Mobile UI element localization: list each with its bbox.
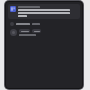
- button[interactable]: Action: [32, 29, 41, 33]
- button[interactable]: Action: [8, 29, 80, 36]
- button[interactable]: [8, 21, 80, 27]
- button[interactable]: App icon: [10, 6, 16, 12]
- button[interactable]: App icon: [8, 4, 80, 19]
- button[interactable]: Action: [19, 29, 30, 33]
